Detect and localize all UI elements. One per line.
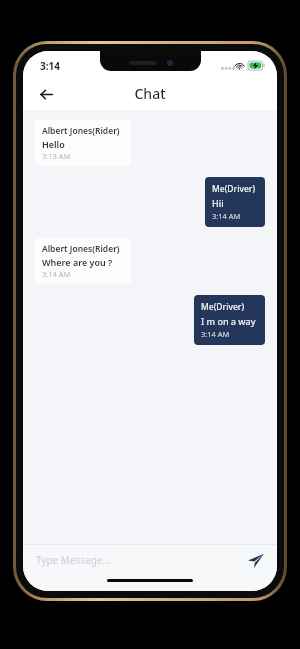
button[interactable]: Albert Jones(Rider): [35, 120, 131, 166]
button[interactable]: Type Message…: [23, 545, 243, 575]
staticText: Hello: [42, 138, 65, 150]
button[interactable]: Send: [243, 548, 267, 572]
staticText: 3:14 AM: [42, 269, 71, 279]
button[interactable]: Me(Driver): [194, 295, 265, 345]
staticText: 3:14 AM: [212, 211, 241, 221]
staticText: Hii: [212, 197, 224, 209]
staticText: Albert Jones(Rider): [42, 243, 120, 255]
button[interactable]: Back: [31, 79, 61, 109]
staticText: 3:13 AM: [42, 151, 71, 161]
staticText: 3:14 AM: [201, 329, 230, 339]
staticText: I m on a way: [201, 315, 256, 327]
staticText: Me(Driver): [212, 183, 256, 195]
button[interactable]: Albert Jones(Rider): [35, 238, 131, 284]
staticText: Albert Jones(Rider): [42, 125, 120, 137]
staticText: 3:14: [40, 59, 60, 73]
staticText: Chat: [134, 84, 166, 103]
staticText: Me(Driver): [201, 301, 245, 313]
button[interactable]: Me(Driver): [205, 177, 265, 227]
staticText: Type Message…: [36, 553, 111, 567]
staticText: Where are you ?: [42, 256, 113, 268]
